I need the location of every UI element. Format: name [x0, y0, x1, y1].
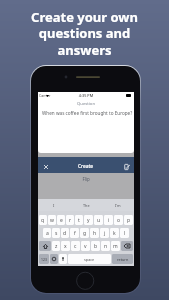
button[interactable]: b	[91, 241, 100, 251]
staticText: Carrier	[39, 93, 51, 98]
staticText: e	[60, 217, 63, 224]
staticText: b	[94, 243, 98, 250]
staticText: j	[104, 230, 106, 237]
button[interactable]: h	[90, 228, 99, 238]
button[interactable]: Shift	[39, 241, 51, 251]
staticText: k	[113, 230, 116, 237]
staticText: a	[46, 230, 49, 237]
button[interactable]: Create	[78, 163, 94, 170]
button[interactable]: Emoji	[50, 254, 58, 264]
staticText: n	[104, 243, 108, 250]
staticText: z	[55, 243, 58, 250]
button[interactable]: 123	[39, 254, 49, 264]
button[interactable]: t	[75, 215, 83, 225]
button[interactable]: Add card	[122, 162, 131, 171]
button[interactable]: x	[61, 241, 70, 251]
button[interactable]: f	[70, 228, 79, 238]
button[interactable]: d	[61, 228, 69, 238]
staticText: c	[74, 243, 77, 250]
button[interactable]: space	[68, 254, 111, 264]
button[interactable]: g	[80, 228, 89, 238]
button[interactable]: k	[110, 228, 119, 238]
staticText: I	[53, 203, 55, 208]
staticText: r	[69, 217, 72, 224]
staticText: t	[78, 217, 80, 224]
button[interactable]: return	[112, 254, 133, 264]
button[interactable]: i	[104, 215, 113, 225]
button[interactable]: y	[84, 215, 93, 225]
button[interactable]: The	[70, 199, 102, 211]
staticText: g	[83, 230, 87, 237]
button[interactable]: z	[52, 241, 60, 251]
button[interactable]: v	[81, 241, 90, 251]
button[interactable]: u	[94, 215, 103, 225]
button[interactable]: r	[66, 215, 74, 225]
button[interactable]: m	[111, 241, 120, 251]
button[interactable]: I'm	[102, 199, 134, 211]
button[interactable]: q	[39, 215, 47, 225]
button[interactable]: o	[114, 215, 123, 225]
button[interactable]: j	[100, 228, 109, 238]
button[interactable]: I	[38, 199, 70, 211]
button[interactable]: n	[101, 241, 110, 251]
staticText: w	[50, 217, 54, 224]
staticText: The	[83, 203, 90, 208]
staticText: d	[63, 230, 67, 237]
staticText: m	[113, 243, 118, 250]
staticText: Create your own questions and answers	[0, 8, 169, 59]
staticText: return	[117, 257, 129, 262]
button[interactable]: a	[43, 228, 51, 238]
staticText: space	[84, 257, 95, 262]
staticText: i	[108, 217, 110, 224]
button[interactable]: l	[120, 228, 129, 238]
staticText: f	[74, 230, 76, 237]
button[interactable]: s	[52, 228, 60, 238]
staticText: When was coffee first brought to Europe?	[42, 110, 133, 116]
staticText: h	[93, 230, 97, 237]
staticText: x	[64, 243, 67, 250]
staticText: u	[97, 217, 101, 224]
staticText: y	[87, 217, 90, 224]
button[interactable]: c	[71, 241, 80, 251]
button[interactable]: w	[48, 215, 56, 225]
staticText: l	[124, 230, 126, 237]
staticText: o	[117, 217, 121, 224]
staticText: v	[84, 243, 87, 250]
button[interactable]: p	[124, 215, 133, 225]
staticText: s	[55, 230, 58, 237]
button[interactable]: e	[57, 215, 65, 225]
button[interactable]: Flip	[38, 176, 134, 182]
staticText: Question	[38, 101, 134, 107]
button[interactable]: Backspace	[121, 241, 133, 251]
button[interactable]: Dictate	[59, 254, 67, 264]
button[interactable]: Close	[41, 162, 50, 171]
staticText: q	[41, 217, 45, 224]
staticText: 4:35 PM	[38, 93, 134, 98]
staticText: I'm	[115, 203, 121, 208]
staticText: p	[127, 217, 131, 224]
staticText: 123	[41, 257, 47, 262]
